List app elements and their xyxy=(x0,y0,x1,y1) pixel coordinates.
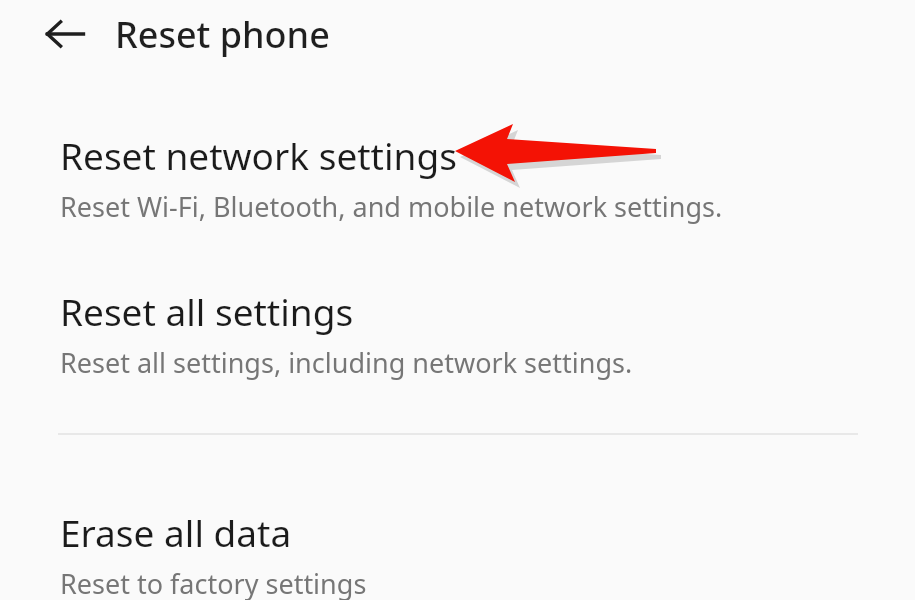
button[interactable]: Back xyxy=(38,7,92,61)
staticText: Reset all settings, including network se… xyxy=(60,344,633,381)
button[interactable]: Reset network settings xyxy=(0,118,915,228)
staticText: Erase all data xyxy=(60,507,292,557)
button[interactable]: Reset all settings xyxy=(0,274,915,384)
staticText: Reset phone xyxy=(115,10,330,59)
staticText: Reset Wi-Fi, Bluetooth, and mobile netwo… xyxy=(60,188,723,225)
staticText: Reset to factory settings xyxy=(60,565,367,600)
button[interactable]: Erase all data xyxy=(0,495,915,600)
staticText: Reset network settings xyxy=(60,130,457,180)
staticText: Reset all settings xyxy=(60,286,354,336)
